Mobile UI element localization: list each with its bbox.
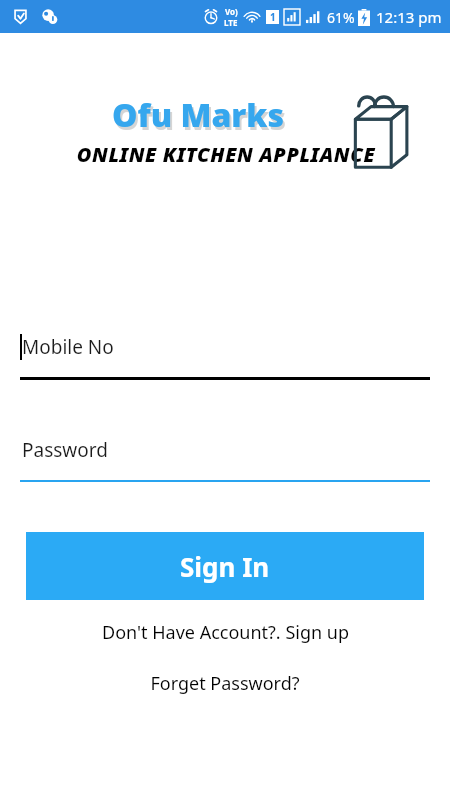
- staticText: Ofu Marks: [114, 96, 287, 140]
- staticText: 61%: [327, 8, 355, 27]
- staticText: Forget Password?: [150, 671, 300, 696]
- staticText: 1: [270, 10, 276, 24]
- staticText: 12:13 pm: [376, 7, 442, 27]
- staticText: ONLINE KITCHEN APPLIANCE: [46, 141, 406, 168]
- staticText: Don't Have Account?. Sign up: [102, 620, 349, 645]
- staticText: LTE: [224, 17, 238, 28]
- staticText: Ofu Marks: [112, 93, 285, 137]
- button[interactable]: Sign In: [26, 532, 424, 600]
- staticText: Vo): [225, 6, 238, 17]
- button[interactable]: Password: [20, 434, 430, 482]
- button[interactable]: Forget Password?: [0, 671, 450, 696]
- button[interactable]: Mobile No: [20, 331, 430, 380]
- staticText: Mobile No: [22, 334, 114, 360]
- staticText: Sign In: [180, 549, 270, 584]
- staticText: Password: [22, 437, 108, 463]
- button[interactable]: Don't Have Account?. Sign up: [0, 620, 450, 645]
